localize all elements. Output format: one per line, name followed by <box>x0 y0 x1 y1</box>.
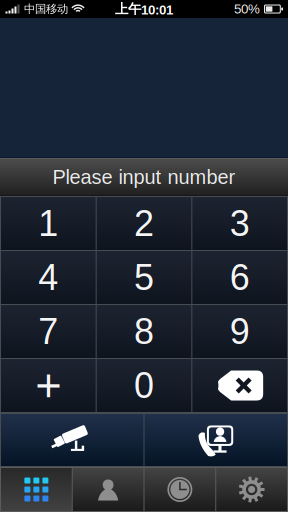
button[interactable]: 5 <box>97 251 191 304</box>
button[interactable]: 2 <box>97 197 191 250</box>
button[interactable]: 6 <box>192 251 287 304</box>
button[interactable]: 1 <box>1 197 96 250</box>
button[interactable]: Contacts <box>73 468 144 511</box>
staticText: + <box>35 360 61 411</box>
staticText: 中国移动 <box>24 2 68 16</box>
staticText: 5 <box>134 257 154 298</box>
button[interactable]: Recents <box>144 468 215 511</box>
staticText: 0 <box>134 365 154 406</box>
button[interactable]: 4 <box>1 251 96 304</box>
staticText: 上午10:01 <box>115 1 173 17</box>
button[interactable]: Video call <box>144 414 287 466</box>
button[interactable]: Keypad <box>1 468 72 511</box>
button[interactable]: Settings <box>216 468 287 511</box>
staticText: 2 <box>134 203 154 244</box>
button[interactable]: 8 <box>97 305 191 358</box>
button[interactable]: Camera <box>1 414 143 466</box>
staticText: 1 <box>38 203 58 244</box>
button[interactable]: 9 <box>192 305 287 358</box>
button[interactable]: 7 <box>1 305 96 358</box>
staticText: 6 <box>230 257 250 298</box>
button[interactable]: 0 <box>97 359 191 412</box>
button[interactable]: Delete <box>192 359 287 412</box>
staticText: Please input number <box>52 166 235 188</box>
button[interactable]: + <box>1 359 96 412</box>
button[interactable]: 3 <box>192 197 287 250</box>
staticText: 50% <box>234 2 260 16</box>
staticText: 3 <box>230 203 250 244</box>
staticText: 7 <box>38 311 58 352</box>
staticText: 4 <box>38 257 58 298</box>
staticText: 8 <box>134 311 154 352</box>
staticText: 9 <box>230 311 250 352</box>
